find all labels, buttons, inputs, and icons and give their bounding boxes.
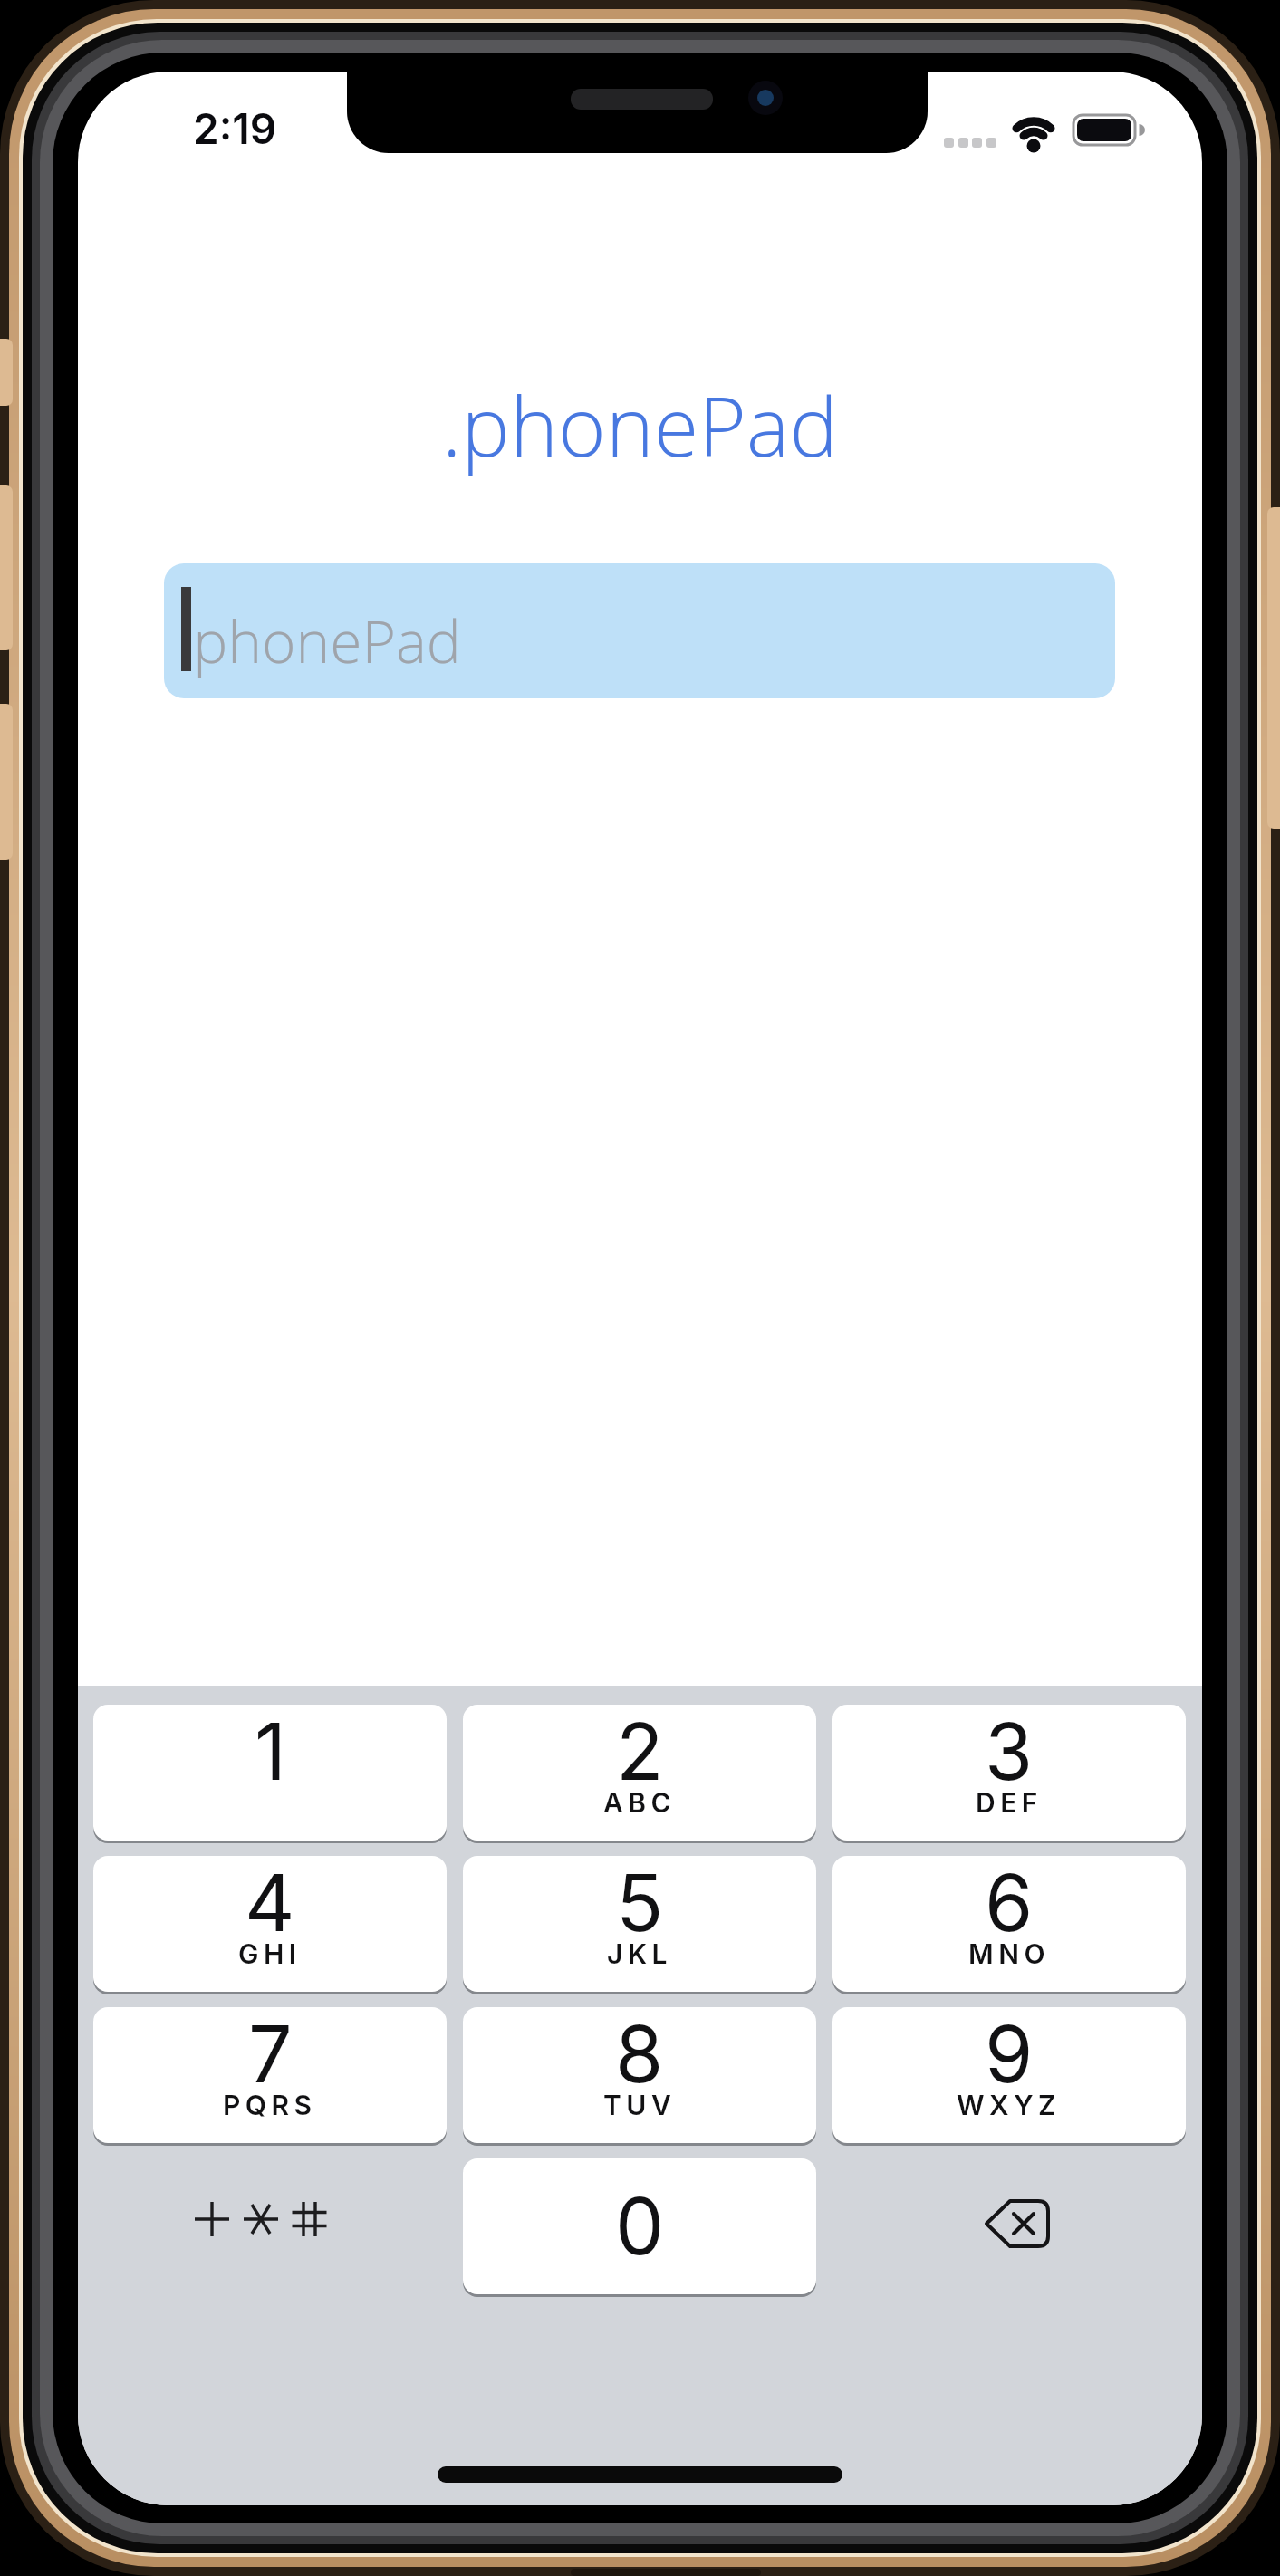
staticText: 0 xyxy=(615,2179,665,2273)
button[interactable]: 0 xyxy=(463,2158,816,2294)
staticText: GHI xyxy=(238,1937,302,1970)
staticText: 5 xyxy=(616,1856,664,1950)
staticText: 4 xyxy=(245,1856,295,1950)
button[interactable]: 8 xyxy=(463,2007,816,2143)
staticText: 2 xyxy=(616,1705,664,1799)
staticText: 8 xyxy=(615,2007,664,2101)
button[interactable]: 2 xyxy=(463,1705,816,1841)
staticText: PQRS xyxy=(223,2089,317,2121)
button[interactable]: 6 xyxy=(832,1856,1186,1992)
staticText: 2:19 xyxy=(193,103,277,149)
staticText: 9 xyxy=(985,2007,1034,2101)
button[interactable]: 5 xyxy=(463,1856,816,1992)
staticText: 7 xyxy=(248,2007,293,2101)
staticText: 1 xyxy=(255,1705,286,1799)
staticText: MNO xyxy=(968,1937,1051,1970)
button[interactable]: 4 xyxy=(93,1856,447,1992)
staticText: WXYZ xyxy=(957,2089,1062,2121)
button[interactable]: 9 xyxy=(832,2007,1186,2143)
staticText: ABC xyxy=(603,1786,677,1819)
button[interactable]: .phonePad xyxy=(164,563,1115,698)
staticText: TUV xyxy=(603,2089,677,2121)
staticText: 3 xyxy=(985,1705,1034,1799)
staticText: .phonePad xyxy=(179,601,461,680)
button[interactable]: 1 xyxy=(93,1705,447,1841)
button[interactable] xyxy=(93,2158,447,2294)
staticText: JKL xyxy=(607,1937,672,1970)
staticText: 6 xyxy=(985,1856,1034,1950)
button[interactable]: 3 xyxy=(832,1705,1186,1841)
button[interactable] xyxy=(832,2158,1186,2294)
staticText: DEF xyxy=(976,1786,1043,1819)
button[interactable]: 7 xyxy=(93,2007,447,2143)
staticText: .phonePad xyxy=(78,370,1202,481)
